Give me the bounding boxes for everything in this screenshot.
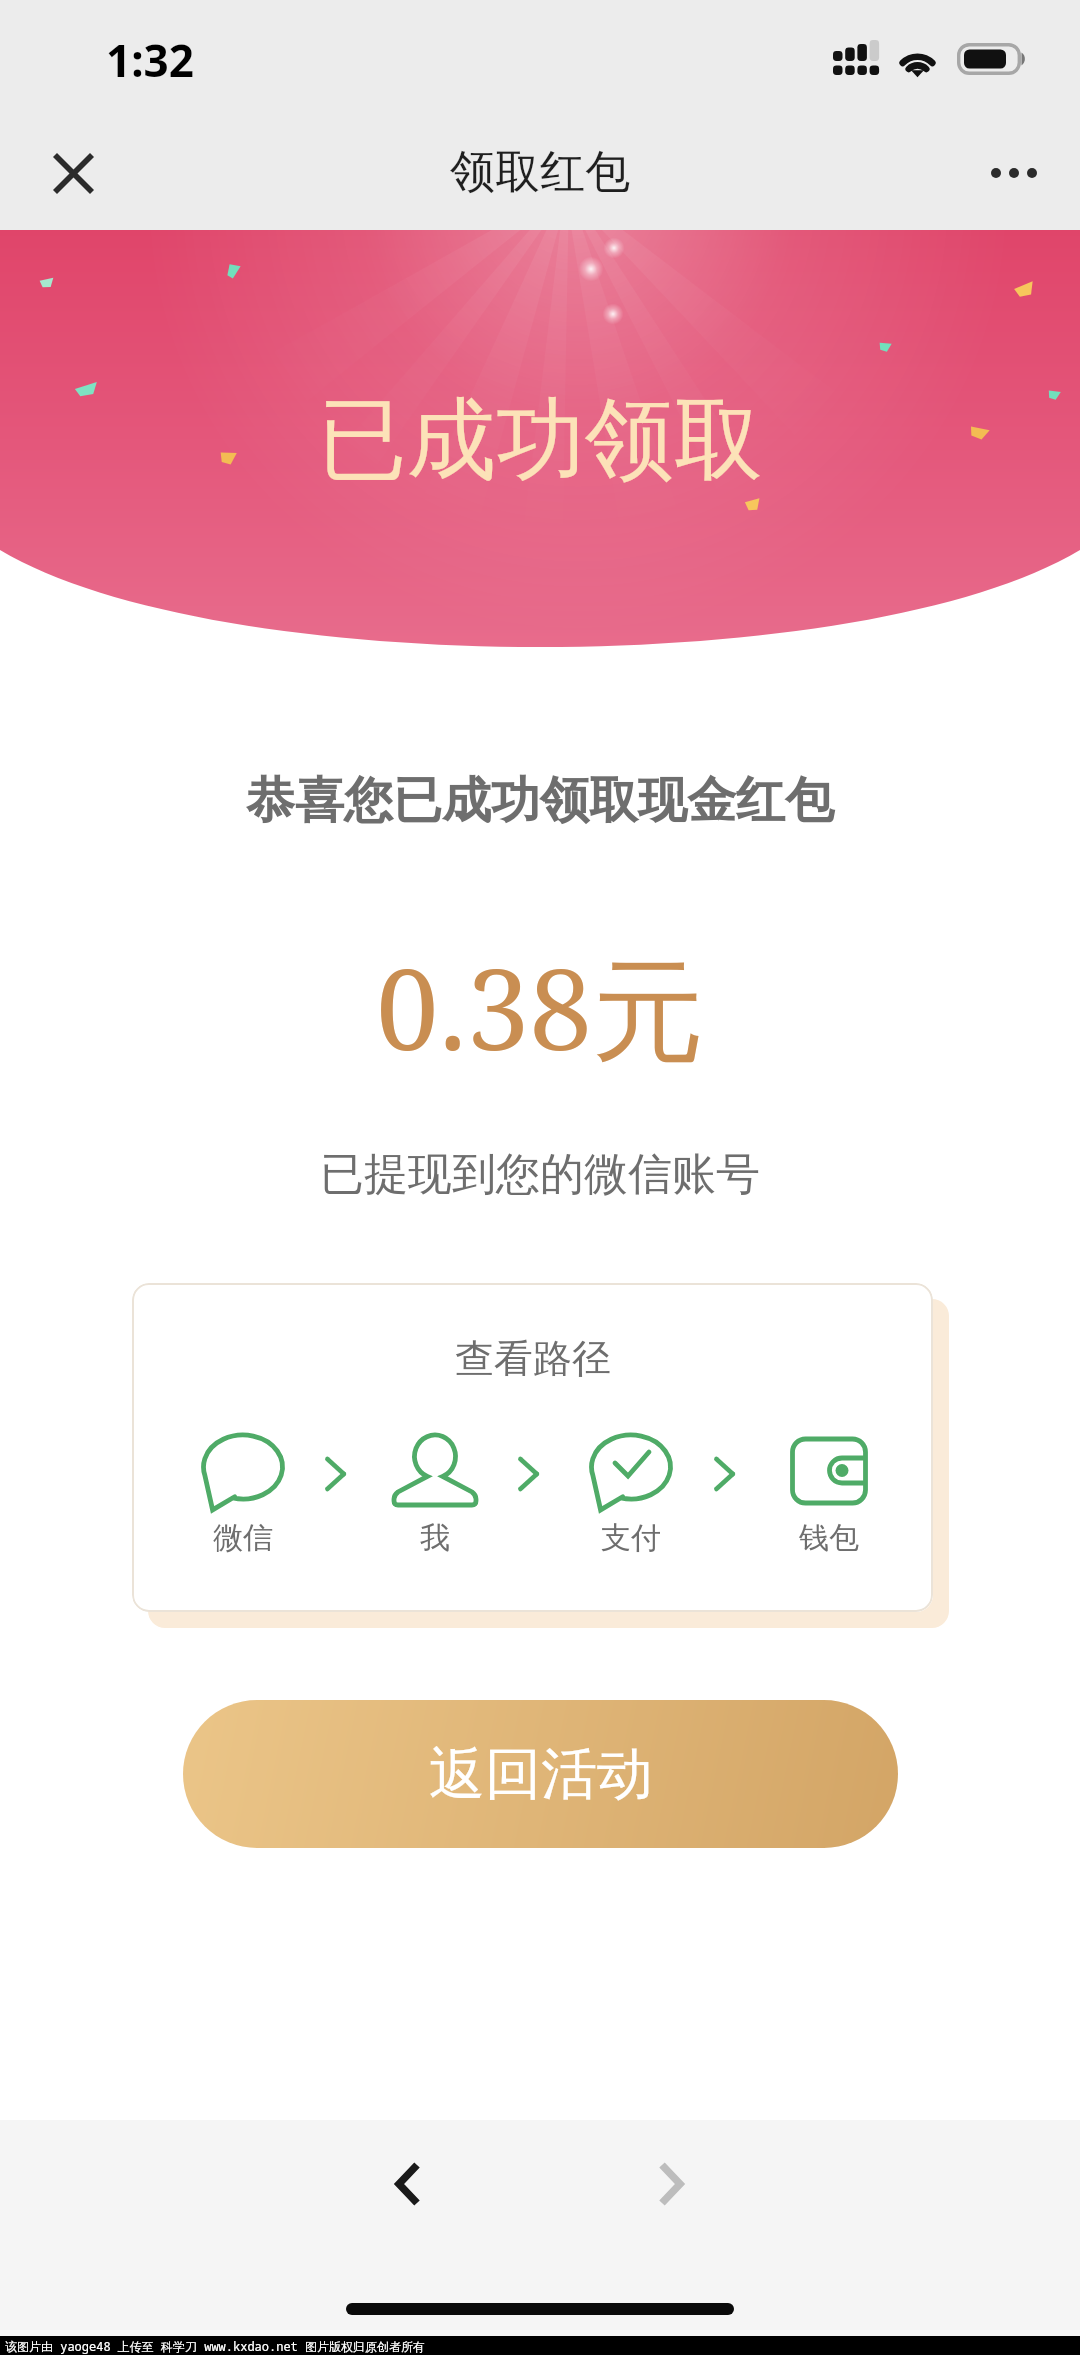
staticText: 已成功领取 — [318, 384, 763, 496]
staticText: 已提现到您的微信账号 — [0, 1147, 1080, 1202]
staticText: 钱包 — [799, 1519, 859, 1557]
button[interactable]: Forward — [616, 2129, 726, 2239]
button[interactable]: Back — [353, 2129, 463, 2239]
button[interactable]: Close — [36, 136, 110, 210]
button[interactable]: 返回活动 — [183, 1700, 898, 1848]
staticText: 我 — [420, 1519, 450, 1557]
staticText: 领取红包 — [450, 144, 630, 201]
button[interactable]: 微信 — [187, 1435, 299, 1557]
staticText: 1:32 — [106, 30, 194, 90]
button[interactable]: 支付 — [575, 1435, 687, 1557]
staticText: 该图片由 yaoge48 上传至 科学刀 www.kxdao.net 图片版权归… — [5, 2338, 426, 2354]
staticText: 查看路径 — [455, 1334, 611, 1383]
button[interactable]: 钱包 — [773, 1435, 885, 1557]
staticText: 0.38元 — [0, 930, 1080, 1083]
staticText: 微信 — [213, 1519, 273, 1557]
staticText: 恭喜您已成功领取现金红包 — [0, 770, 1080, 832]
staticText: 支付 — [601, 1519, 661, 1557]
button[interactable]: 我 — [379, 1435, 491, 1557]
button[interactable]: More options — [975, 134, 1053, 212]
staticText: 返回活动 — [429, 1739, 653, 1810]
